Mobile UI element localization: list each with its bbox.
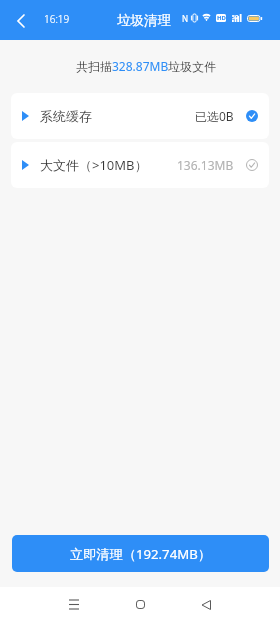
staticText: 系统缓存 xyxy=(40,108,92,124)
staticText: 136.13MB xyxy=(177,157,234,173)
button[interactable]: Home xyxy=(118,587,163,622)
button[interactable]: 大文件（>10MB） xyxy=(11,142,269,188)
button[interactable]: 立即清理（192.74MB） xyxy=(12,535,269,572)
staticText: 大文件（>10MB） xyxy=(40,156,148,174)
button[interactable]: Back xyxy=(8,8,34,34)
button[interactable]: Recents xyxy=(51,587,96,622)
staticText: HD xyxy=(217,14,226,22)
staticText: 垃圾清理 xyxy=(117,12,171,29)
staticText: 已选0B xyxy=(195,108,234,124)
staticText: 立即清理（192.74MB） xyxy=(70,545,211,563)
button[interactable]: 系统缓存 xyxy=(11,93,269,139)
staticText: 5G xyxy=(232,14,239,21)
staticText: N xyxy=(182,13,189,24)
staticText: 16:19 xyxy=(44,12,70,26)
button[interactable]: Back xyxy=(184,587,229,622)
staticText: 共扫描328.87MB垃圾文件 xyxy=(76,58,217,74)
